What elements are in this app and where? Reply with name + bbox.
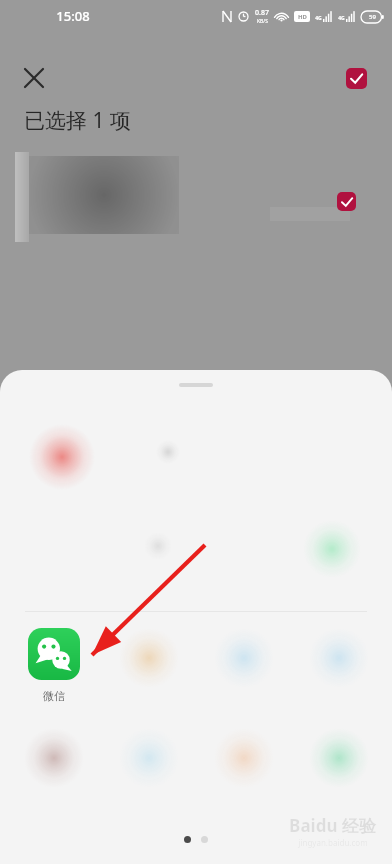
button[interactable] (101, 628, 196, 720)
staticText: jingyan.baidu.com (298, 837, 368, 848)
button[interactable] (6, 728, 101, 820)
staticText: 4G (338, 15, 345, 22)
staticText: 已选择 1 项 (24, 106, 131, 135)
staticText: 15:08 (56, 7, 90, 25)
button[interactable] (101, 728, 196, 820)
button[interactable]: 微信 (6, 628, 101, 720)
staticText: 微信 (43, 689, 65, 703)
staticText: KB/S (257, 18, 268, 25)
button[interactable]: Item selected (327, 182, 365, 220)
button[interactable] (196, 728, 291, 820)
button[interactable]: Confirm selection (336, 58, 376, 98)
button[interactable] (291, 628, 386, 720)
button[interactable] (21, 418, 371, 496)
staticText: 0.87 (255, 8, 269, 18)
button[interactable] (291, 728, 386, 820)
staticText: 4G (315, 15, 322, 22)
staticText: Baidu 经验 (289, 814, 376, 837)
staticText: HD (298, 13, 307, 21)
button[interactable] (21, 514, 371, 580)
button[interactable] (196, 628, 291, 720)
button[interactable]: Close (12, 56, 56, 100)
staticText: 59 (369, 13, 376, 21)
